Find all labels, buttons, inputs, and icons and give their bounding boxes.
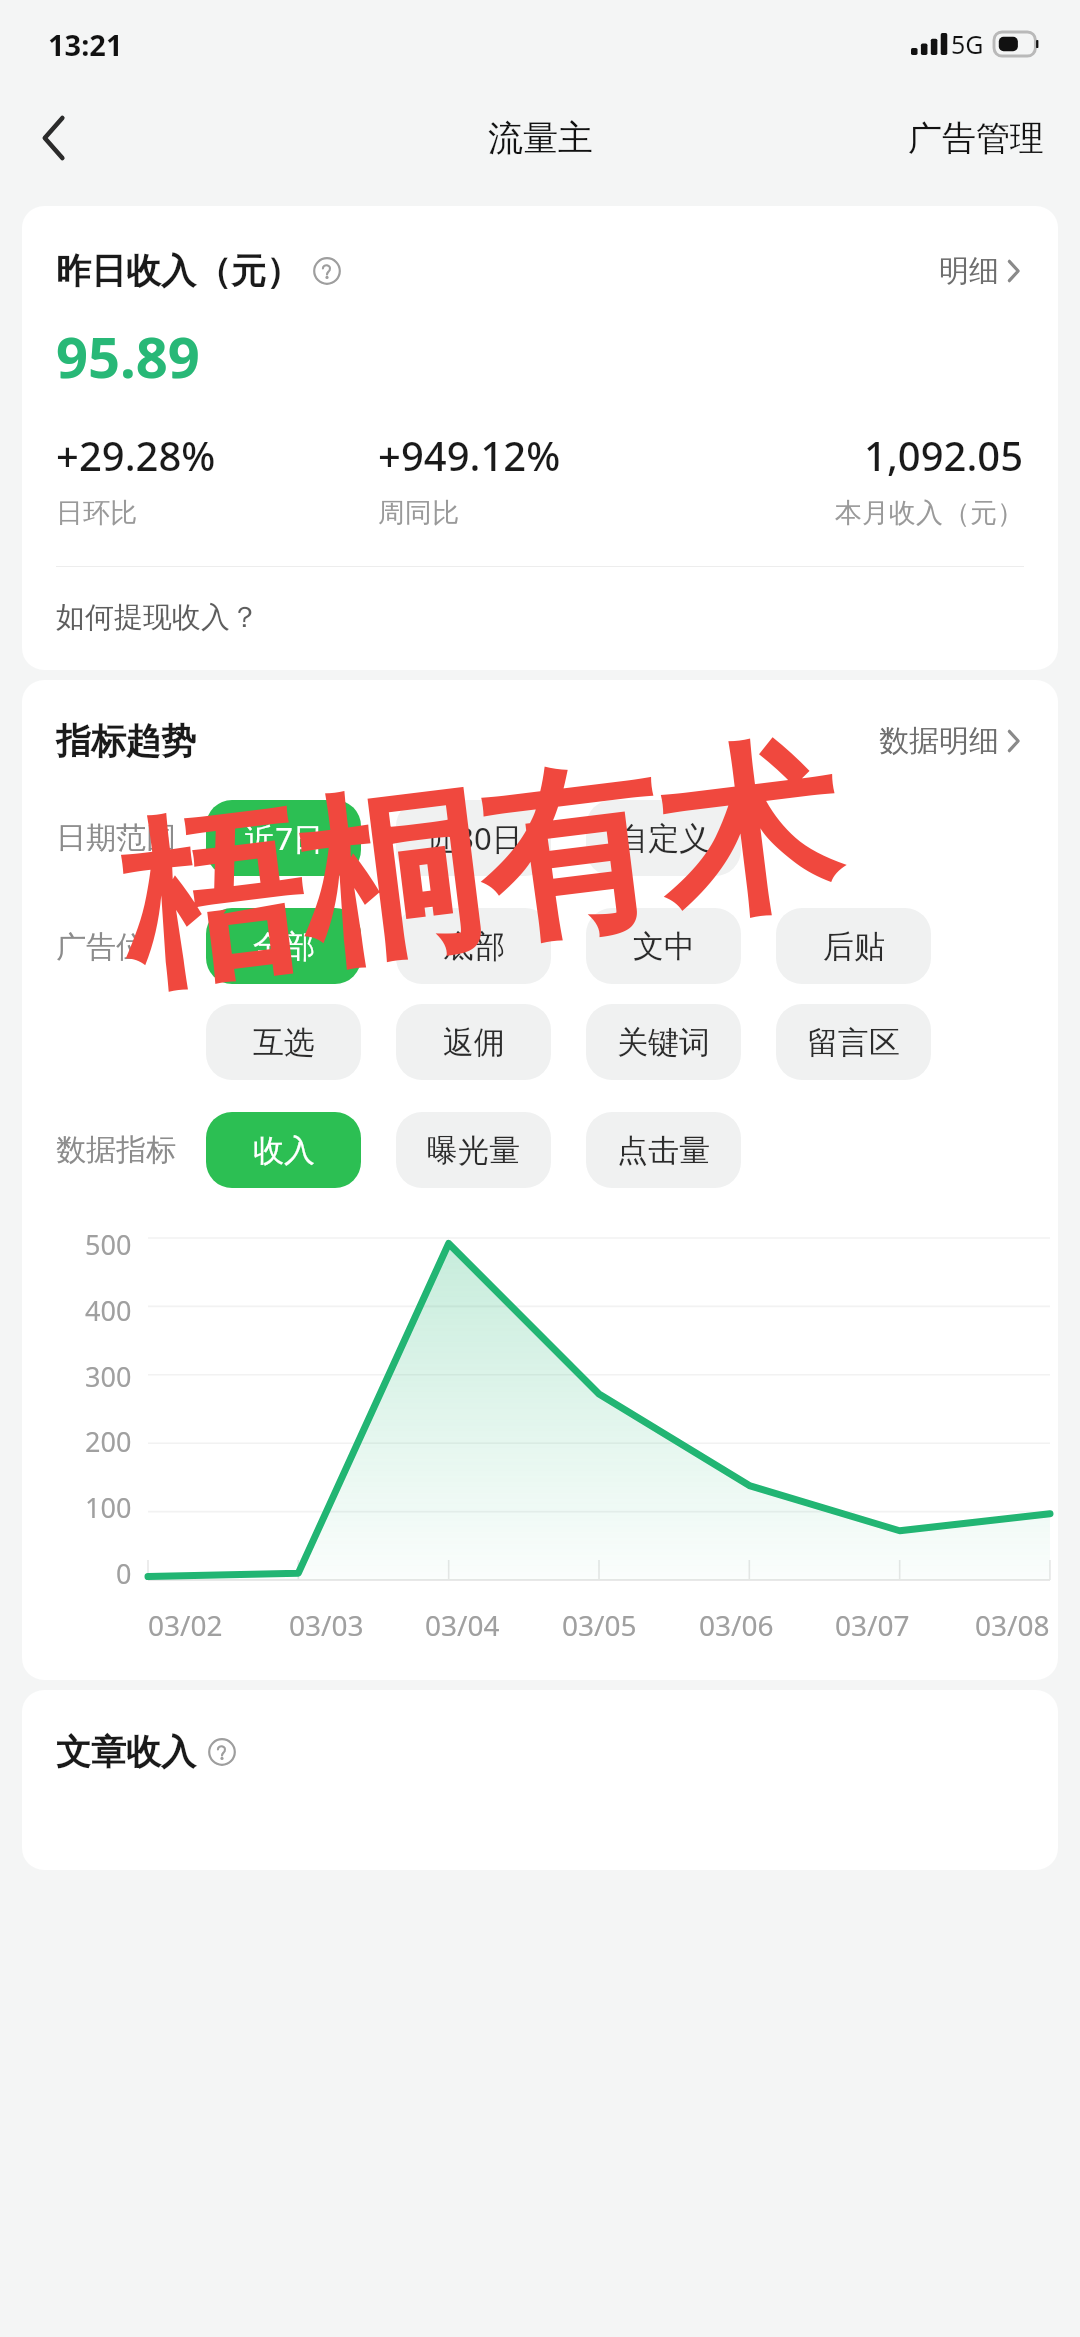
button[interactable]: 明细: [935, 246, 1024, 296]
staticText: 200: [85, 1423, 132, 1460]
button[interactable]: 点击量: [586, 1112, 741, 1188]
staticText: 近7日: [244, 817, 324, 859]
button[interactable]: 数据明细: [875, 716, 1024, 766]
staticText: 近30日: [425, 817, 523, 859]
staticText: 指标趋势: [56, 719, 196, 763]
staticText: 留言区: [807, 1023, 900, 1062]
button[interactable]: 广告管理: [872, 103, 1080, 174]
staticText: 互选: [253, 1023, 315, 1062]
staticText: 数据指标: [56, 1131, 206, 1169]
staticText: 03/07: [835, 1606, 910, 1644]
staticText: 日期范围: [56, 819, 206, 857]
staticText: 1,092.05: [864, 428, 1024, 482]
staticText: 明细: [939, 252, 999, 290]
button[interactable]: 关键词: [586, 1004, 741, 1080]
staticText: 03/03: [289, 1606, 364, 1644]
button[interactable]: Back: [18, 102, 90, 174]
staticText: 03/02: [148, 1606, 223, 1644]
staticText: 500: [85, 1226, 132, 1263]
staticText: 03/05: [562, 1606, 637, 1644]
staticText: 100: [85, 1489, 132, 1526]
staticText: 曝光量: [427, 1131, 520, 1170]
button[interactable]: 近7日: [206, 800, 361, 876]
staticText: 日环比: [56, 496, 137, 530]
staticText: 13:21: [48, 25, 123, 64]
staticText: 底部: [443, 927, 505, 966]
staticText: 流量主: [488, 116, 593, 160]
staticText: 03/08: [975, 1606, 1050, 1644]
staticText: 本月收入（元）: [835, 496, 1024, 530]
button[interactable]: Help about yesterday income: [309, 253, 345, 289]
staticText: 广告管理: [908, 117, 1044, 160]
button[interactable]: 如何提现收入？: [22, 567, 1058, 670]
staticText: 后贴: [823, 927, 885, 966]
staticText: 03/06: [699, 1606, 774, 1644]
staticText: 点击量: [617, 1131, 710, 1170]
button[interactable]: 互选: [206, 1004, 361, 1080]
staticText: 全部: [253, 927, 315, 966]
button[interactable]: 返佣: [396, 1004, 551, 1080]
staticText: 400: [85, 1292, 132, 1329]
staticText: 文中: [633, 927, 695, 966]
staticText: 300: [85, 1358, 132, 1395]
staticText: 收入: [253, 1131, 315, 1170]
button[interactable]: 底部: [396, 908, 551, 984]
staticText: 数据明细: [879, 722, 999, 760]
button[interactable]: 留言区: [776, 1004, 931, 1080]
staticText: 关键词: [617, 1023, 710, 1062]
staticText: 周同比: [378, 496, 459, 530]
staticText: 自定义: [617, 819, 710, 858]
button[interactable]: 曝光量: [396, 1112, 551, 1188]
staticText: 广告位: [56, 928, 206, 966]
staticText: +29.28%: [56, 428, 216, 482]
staticText: 昨日收入（元）: [56, 249, 301, 293]
button[interactable]: 全部: [206, 908, 361, 984]
staticText: 返佣: [443, 1023, 505, 1062]
button[interactable]: 自定义: [586, 800, 741, 876]
staticText: 如何提现收入？: [56, 599, 259, 636]
staticText: 文章收入: [56, 1730, 196, 1774]
staticText: 03/04: [425, 1606, 500, 1644]
button[interactable]: 后贴: [776, 908, 931, 984]
button[interactable]: 近30日: [396, 800, 551, 876]
staticText: +949.12%: [378, 428, 561, 482]
staticText: 95.89: [56, 318, 200, 394]
staticText: 5G: [951, 27, 984, 61]
button[interactable]: Help about article income: [204, 1734, 240, 1770]
button[interactable]: 文中: [586, 908, 741, 984]
button[interactable]: 收入: [206, 1112, 361, 1188]
staticText: 0: [116, 1555, 132, 1592]
staticText: 梧桐有术: [109, 712, 851, 1025]
